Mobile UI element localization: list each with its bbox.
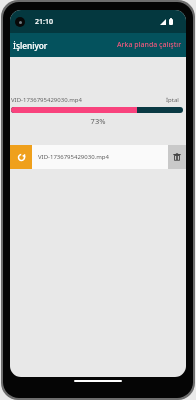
button[interactable]: Delete — [168, 145, 186, 169]
button[interactable]: İptal — [166, 96, 179, 104]
staticText: Arka planda çalıştır — [117, 40, 182, 50]
button[interactable]: Retry — [10, 145, 32, 169]
staticText: İşleniyor — [13, 40, 48, 51]
staticText: 73% — [10, 116, 186, 126]
staticText: İptal — [166, 96, 179, 104]
button[interactable]: Retry — [10, 145, 186, 169]
button[interactable]: Arka planda çalıştır — [113, 35, 186, 55]
staticText: VID-1736795429030.mp4 — [11, 96, 166, 104]
staticText: VID-1736795429030.mp4 — [38, 153, 162, 161]
staticText: 21:10 — [35, 17, 53, 27]
